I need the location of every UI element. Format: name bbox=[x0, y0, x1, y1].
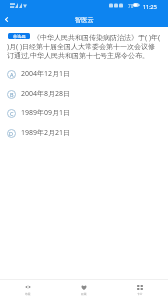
staticText: C bbox=[10, 110, 14, 117]
button[interactable]: B bbox=[0, 84, 168, 104]
button[interactable]: Back bbox=[0, 13, 13, 26]
staticText: 1989年2月21日 bbox=[21, 128, 71, 138]
staticText: 78 bbox=[128, 3, 134, 9]
staticText: 卡片 bbox=[137, 292, 143, 296]
button[interactable]: D bbox=[0, 123, 168, 143]
staticText: B bbox=[10, 91, 14, 98]
button[interactable]: Show answer bbox=[0, 280, 56, 300]
staticText: 答案 bbox=[25, 292, 31, 296]
staticText: D bbox=[9, 130, 14, 137]
staticText: 11:25 bbox=[143, 3, 157, 10]
staticText: 订通过,中华人民共和国第十七号主席令公布。 bbox=[7, 51, 149, 61]
staticText: 智医云 bbox=[75, 16, 94, 24]
staticText: 收藏 bbox=[81, 292, 87, 296]
staticText: 2004年12月1日 bbox=[21, 69, 71, 79]
staticText: 2004年8月28日 bbox=[21, 89, 71, 99]
button[interactable]: Answer card bbox=[112, 280, 168, 300]
button[interactable]: Favorite bbox=[56, 280, 112, 300]
staticText: 《中华人民共和国传染病防治法》于( )年( bbox=[33, 33, 161, 43]
button[interactable]: A bbox=[0, 64, 168, 84]
button[interactable]: 单选题 bbox=[8, 33, 30, 39]
staticText: 1989年09月1日 bbox=[21, 108, 71, 118]
staticText: A bbox=[10, 71, 14, 78]
staticText: 单选题 bbox=[13, 34, 26, 39]
staticText: )月( )日经第十届全国人大常委会第十一次会议修 bbox=[7, 42, 156, 52]
button[interactable]: C bbox=[0, 103, 168, 123]
